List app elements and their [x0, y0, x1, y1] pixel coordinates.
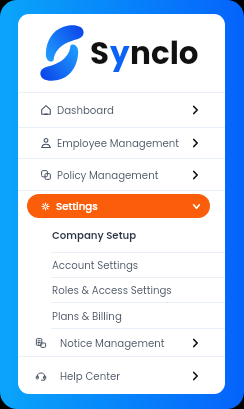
- staticText: Roles & Access Settings: [52, 283, 172, 297]
- staticText: y: [110, 31, 130, 74]
- button[interactable]: Roles & Access Settings: [18, 278, 225, 302]
- button[interactable]: Help Center: [18, 357, 225, 394]
- other: Open Help Center: [193, 372, 198, 380]
- button[interactable]: Policy Management: [18, 159, 225, 190]
- staticText: Help Center: [60, 369, 121, 383]
- other: Open Employee Management: [193, 139, 198, 147]
- button[interactable]: Dashboard: [18, 93, 225, 127]
- button[interactable]: Settings: [27, 194, 210, 218]
- staticText: Settings: [56, 199, 98, 213]
- staticText: Employee Management: [57, 136, 180, 150]
- button[interactable]: Company Setup: [18, 218, 225, 252]
- button[interactable]: Account Settings: [18, 253, 225, 277]
- staticText: Company Setup: [52, 228, 137, 242]
- other: Open Dashboard: [193, 106, 198, 114]
- button[interactable]: Employee Management: [18, 128, 225, 158]
- staticText: Plans & Billing: [52, 309, 122, 323]
- staticText: Account Settings: [52, 258, 139, 272]
- staticText: S: [90, 31, 110, 74]
- button[interactable]: Notice Management: [18, 329, 225, 356]
- staticText: Dashboard: [57, 103, 114, 117]
- staticText: nclo: [130, 31, 199, 74]
- other: Open Notice Management: [193, 339, 198, 347]
- button[interactable]: Plans & Billing: [18, 303, 225, 328]
- staticText: Notice Management: [60, 336, 165, 350]
- other: Open Policy Management: [193, 171, 198, 179]
- staticText: Policy Management: [57, 168, 159, 182]
